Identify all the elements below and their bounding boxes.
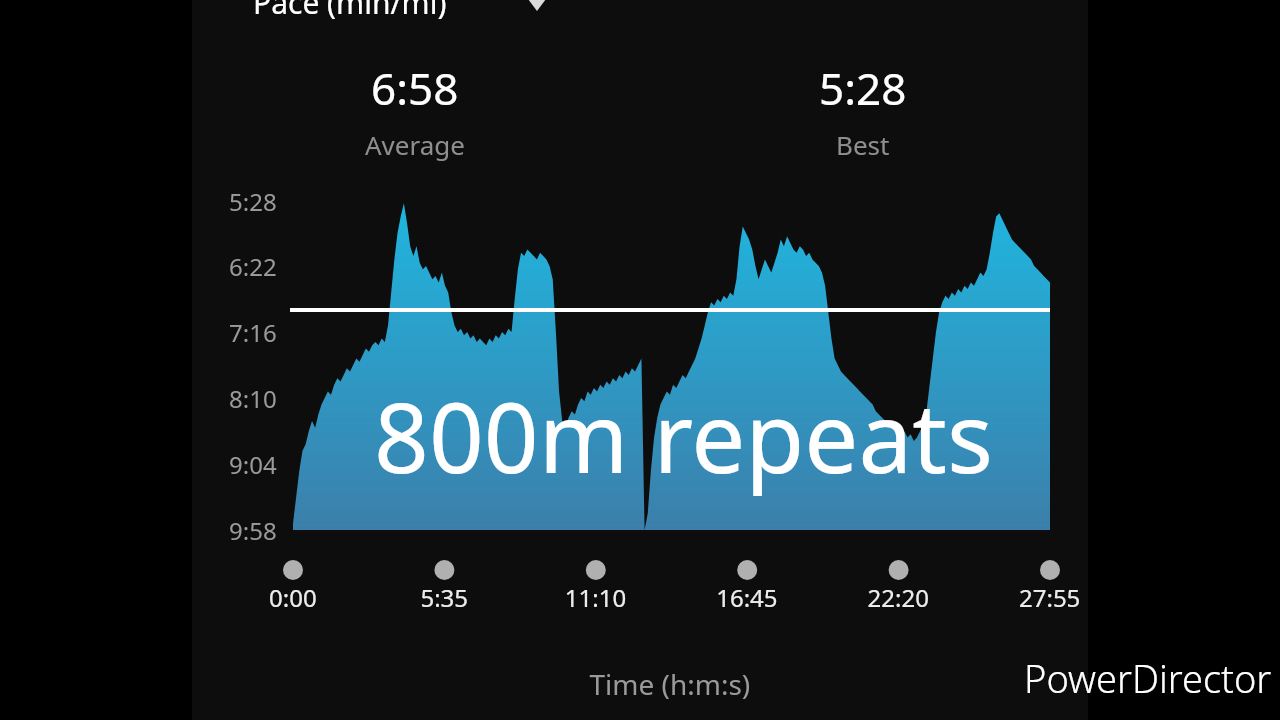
button[interactable]: Pace chart for 800m repeats workout [0, 0, 1280, 720]
